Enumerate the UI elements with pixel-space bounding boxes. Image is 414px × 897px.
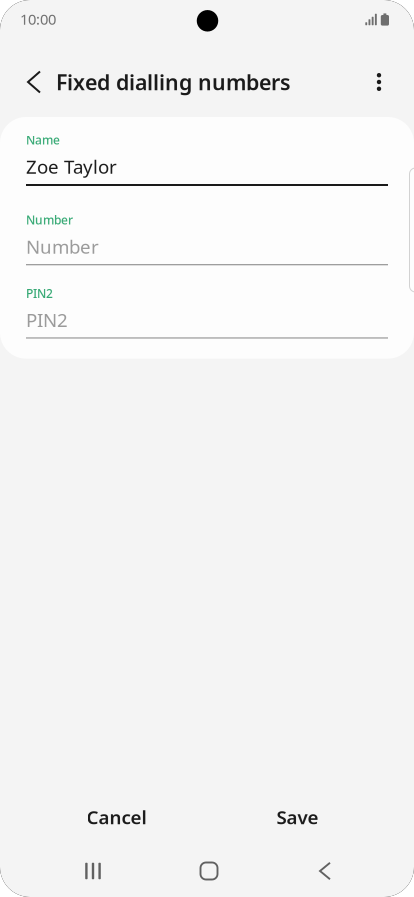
button[interactable]: Home (151, 851, 267, 891)
staticText: PIN2 (26, 307, 68, 332)
button[interactable]: Save (207, 794, 388, 840)
staticText: PIN2 (26, 285, 53, 301)
staticText: Save (276, 805, 318, 829)
staticText: Number (26, 234, 99, 259)
staticText: Zoe Taylor (26, 154, 117, 179)
staticText: Cancel (86, 805, 146, 829)
button[interactable]: Cancel (26, 794, 207, 840)
staticText: 10:00 (20, 9, 56, 29)
staticText: Number (26, 212, 73, 228)
staticText: Fixed dialling numbers (56, 68, 291, 96)
button[interactable]: Recents (35, 851, 151, 891)
button[interactable]: Back (12, 54, 56, 110)
button[interactable]: More options (357, 54, 401, 110)
staticText: Name (26, 132, 60, 148)
button[interactable]: Back (267, 851, 383, 891)
